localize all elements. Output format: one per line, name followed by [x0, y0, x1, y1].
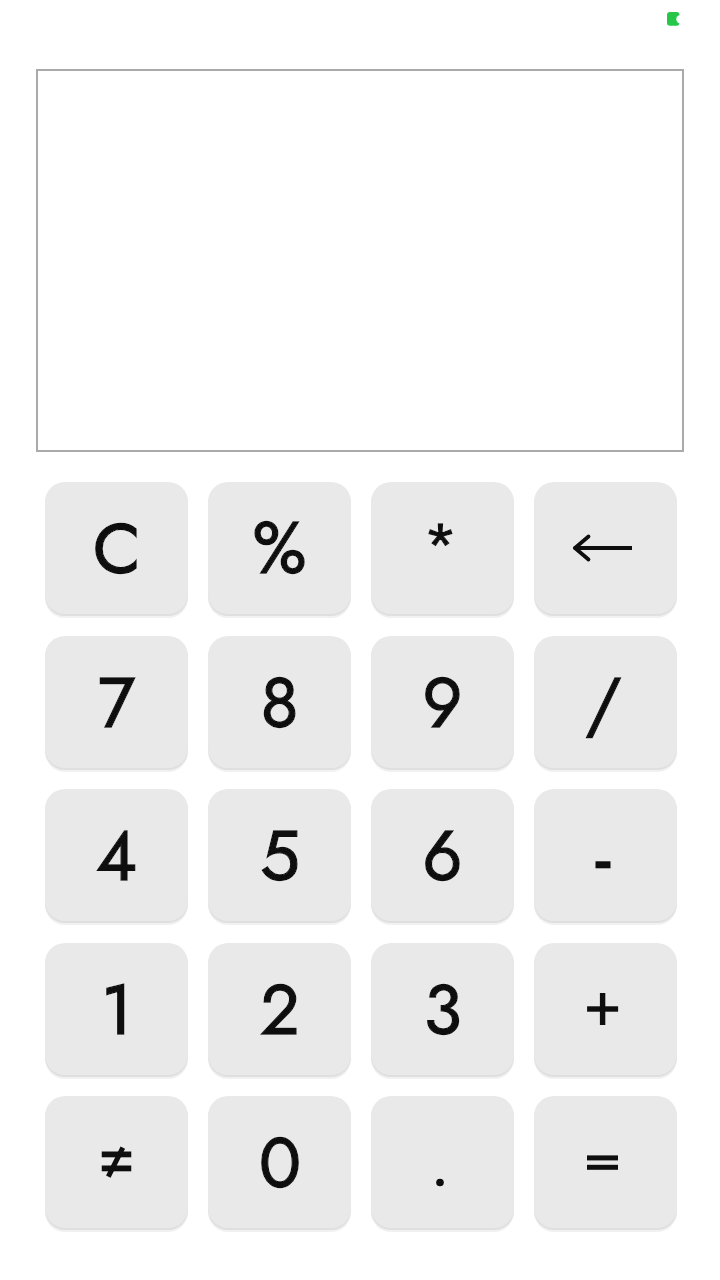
staticText: 4: [96, 805, 137, 906]
staticText: 9: [422, 652, 463, 753]
staticText: 9: [422, 652, 463, 753]
staticText: 7: [98, 652, 135, 753]
staticText: *: [423, 502, 458, 586]
button[interactable]: %: [208, 482, 351, 614]
button[interactable]: 6: [371, 789, 514, 921]
staticText: 3: [423, 959, 462, 1060]
button[interactable]: [534, 1096, 677, 1228]
button[interactable]: 8: [208, 636, 351, 768]
button[interactable]: 3: [371, 943, 514, 1075]
button[interactable]: 1: [45, 943, 188, 1075]
button[interactable]: 0: [208, 1096, 351, 1228]
staticText: 8: [260, 652, 299, 753]
staticText: 8: [260, 652, 299, 753]
staticText: 6: [422, 805, 463, 906]
staticText: *: [423, 502, 458, 586]
staticText: C: [93, 498, 141, 599]
staticText: 2: [260, 959, 300, 1060]
staticText: C: [93, 498, 141, 599]
button[interactable]: [45, 1096, 188, 1228]
button[interactable]: 9: [371, 636, 514, 768]
staticText: 3: [423, 959, 462, 1060]
staticText: 1: [101, 959, 133, 1060]
button[interactable]: [534, 482, 677, 614]
staticText: %: [252, 496, 307, 600]
button[interactable]: *: [371, 482, 514, 614]
staticText: %: [252, 496, 307, 600]
button[interactable]: [534, 789, 677, 921]
staticText: /: [585, 652, 622, 753]
button[interactable]: 2: [208, 943, 351, 1075]
button[interactable]: /: [534, 636, 677, 768]
button[interactable]: [371, 1096, 514, 1228]
button[interactable]: 4: [45, 789, 188, 921]
staticText: 7: [98, 652, 135, 753]
staticText: 5: [260, 805, 300, 906]
staticText: 6: [422, 805, 463, 906]
button[interactable]: 5: [208, 789, 351, 921]
staticText: 4: [96, 805, 137, 906]
staticText: /: [585, 652, 622, 753]
staticText: 2: [260, 959, 300, 1060]
staticText: 0: [259, 1112, 301, 1213]
button[interactable]: C: [45, 482, 188, 614]
staticText: 1: [101, 959, 133, 1060]
button[interactable]: 7: [45, 636, 188, 768]
staticText: 0: [259, 1112, 301, 1213]
staticText: 5: [260, 805, 300, 906]
button[interactable]: [534, 943, 677, 1075]
